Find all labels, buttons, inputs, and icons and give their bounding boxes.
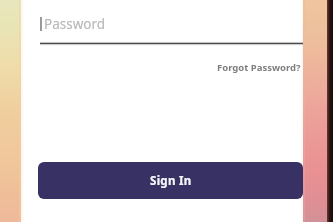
staticText: Forgot Password? bbox=[217, 61, 301, 74]
staticText: Sign In bbox=[150, 173, 192, 189]
button[interactable]: Password bbox=[21, 10, 303, 38]
button[interactable]: Sign In bbox=[38, 162, 303, 199]
button[interactable]: Forgot Password? bbox=[215, 59, 303, 76]
staticText: Password bbox=[44, 15, 106, 33]
